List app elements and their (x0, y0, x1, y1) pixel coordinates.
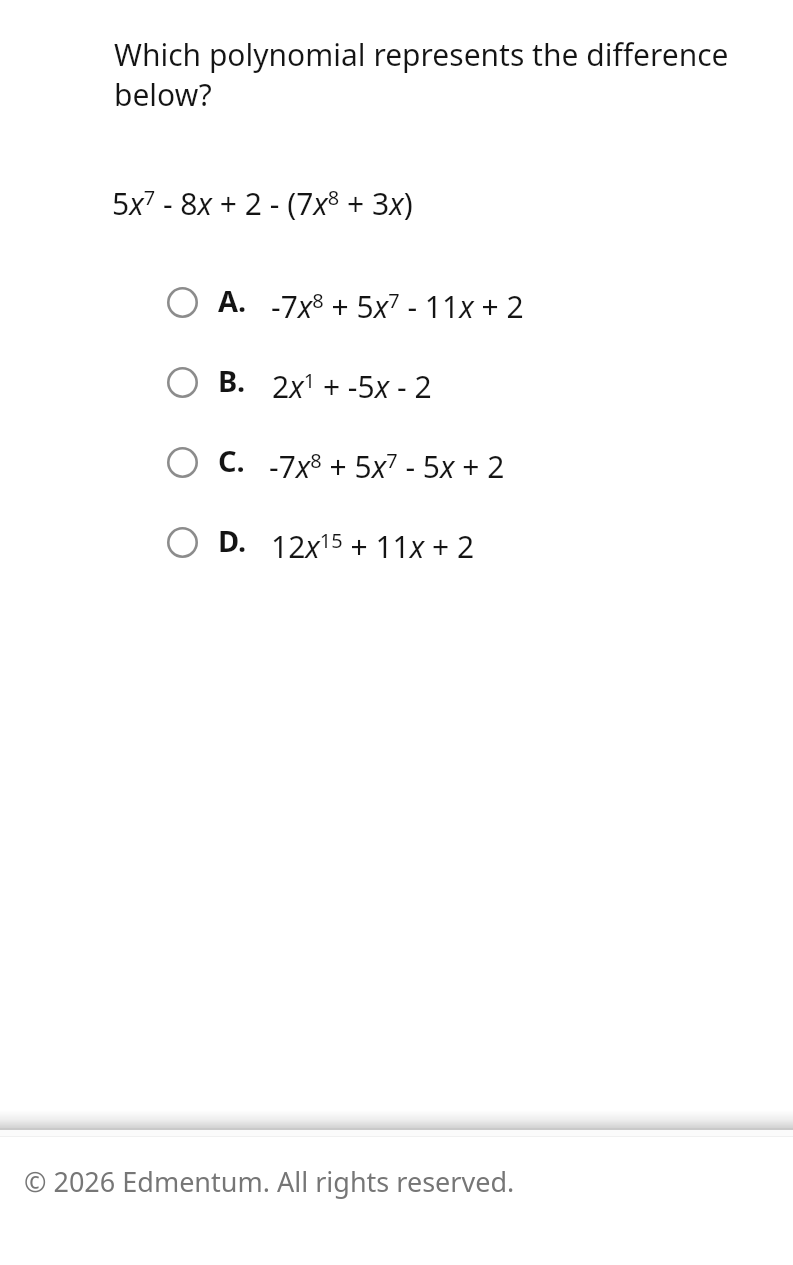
staticText: A. (218, 281, 247, 320)
staticText: © 2026 Edmentum. All rights reserved. (24, 1163, 515, 1200)
staticText: B. (218, 361, 246, 400)
staticText: -7x8 + 5x7 - 5x + 2 (269, 446, 505, 487)
staticText: 5x7 - 8x + 2 - (7x8 + 3x) (112, 183, 413, 224)
staticText: Which polynomial represents the differen… (114, 34, 789, 115)
staticText: 12x15 + 11x + 2 (271, 526, 475, 567)
button[interactable]: B. (0, 342, 793, 422)
button[interactable]: C. (0, 422, 793, 502)
staticText: D. (218, 521, 247, 560)
staticText: C. (218, 441, 245, 480)
staticText: -7x8 + 5x7 - 11x + 2 (271, 286, 524, 327)
button[interactable]: D. (0, 502, 793, 582)
button[interactable]: A. (0, 262, 793, 342)
staticText: 2x1 + -5x - 2 (272, 366, 432, 407)
